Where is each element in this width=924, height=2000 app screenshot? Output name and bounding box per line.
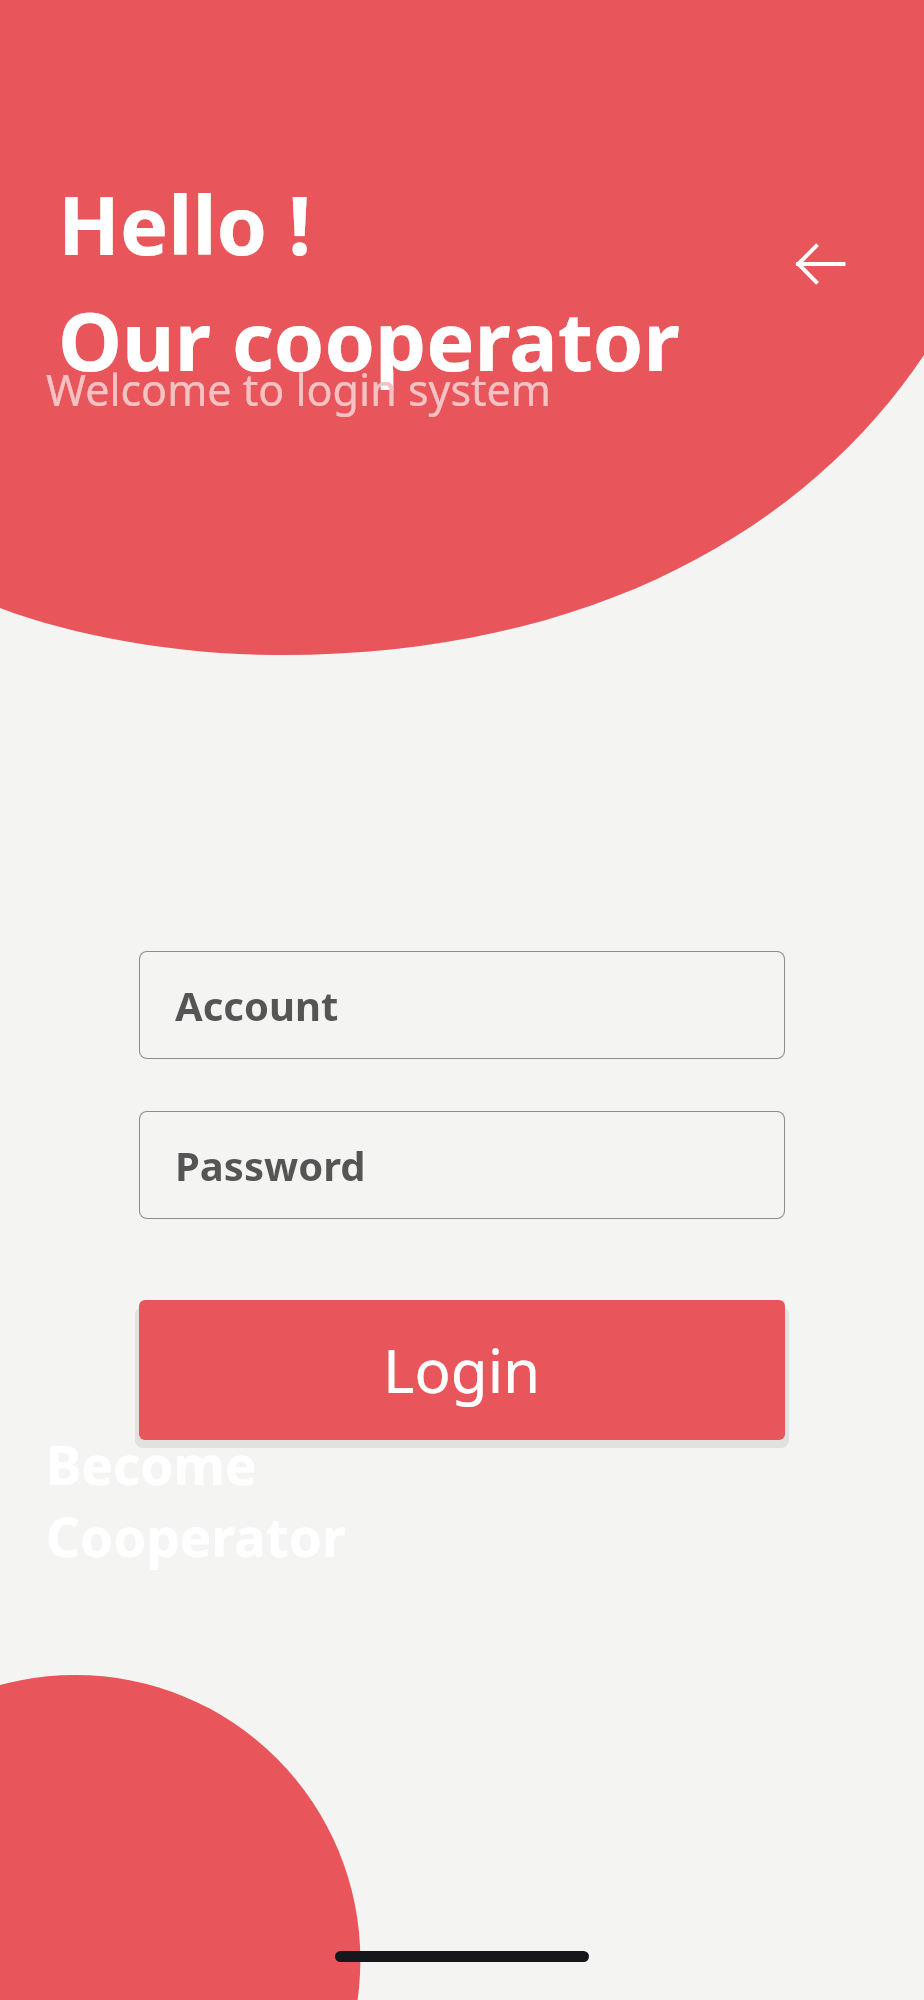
staticText: Account (175, 978, 339, 1032)
staticText: Welcome to login system (46, 360, 551, 419)
button[interactable]: Login (139, 1300, 785, 1440)
staticText: Hello ! (58, 168, 312, 278)
staticText: Become (46, 1428, 257, 1500)
staticText: Login (383, 1329, 541, 1411)
staticText: Our cooperator (58, 284, 680, 394)
button[interactable]: Account (139, 951, 785, 1059)
button[interactable]: Password (139, 1111, 785, 1219)
staticText: Password (175, 1138, 366, 1192)
button[interactable]: Become (46, 1428, 366, 1580)
button[interactable]: Back (772, 216, 868, 312)
staticText: Cooperator (46, 1500, 346, 1572)
